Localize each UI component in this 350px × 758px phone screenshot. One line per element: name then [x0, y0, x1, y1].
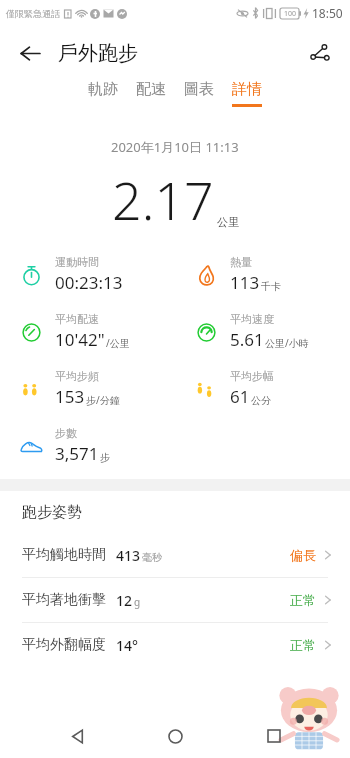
button[interactable]: Back — [10, 33, 50, 73]
staticText: 偏長 — [290, 547, 316, 563]
staticText: 153 — [55, 385, 85, 408]
staticText: 5.61 — [230, 328, 264, 351]
staticText: 圖表 — [184, 80, 214, 99]
staticText: 平均速度 — [230, 312, 274, 326]
button[interactable]: 配速 — [127, 80, 175, 120]
staticText: 正常 — [290, 592, 316, 608]
button[interactable]: Home — [153, 714, 197, 758]
staticText: 毫秒 — [142, 551, 162, 564]
button[interactable]: 平均外翻幅度 — [0, 623, 350, 667]
button[interactable]: 軌跡 — [79, 80, 127, 120]
staticText: 千卡 — [261, 280, 281, 293]
staticText: 平均觸地時間 — [22, 546, 106, 564]
staticText: 跑步姿勢 — [22, 503, 82, 522]
staticText: 2020年1月10日 11:13 — [111, 138, 239, 156]
staticText: 18:50 — [312, 5, 343, 21]
staticText: g — [134, 595, 141, 609]
button[interactable]: Back — [55, 714, 99, 758]
staticText: 413 — [116, 546, 141, 565]
staticText: 3,571 — [55, 442, 99, 465]
button[interactable]: 平均觸地時間 — [0, 533, 350, 577]
button[interactable]: Share — [300, 33, 340, 73]
staticText: 步數 — [55, 426, 77, 440]
staticText: 熱量 — [230, 255, 252, 269]
staticText: 2.17 — [112, 164, 214, 235]
staticText: 戶外跑步 — [58, 41, 138, 66]
staticText: 113 — [230, 271, 260, 294]
staticText: 步 — [100, 451, 110, 464]
staticText: 平均步幅 — [230, 369, 274, 383]
staticText: 配速 — [136, 80, 166, 99]
button[interactable]: 圖表 — [175, 80, 223, 120]
staticText: 12 — [116, 591, 133, 610]
staticText: 14° — [116, 636, 138, 655]
staticText: 公里 — [217, 215, 239, 229]
staticText: 步/分鐘 — [86, 393, 120, 407]
staticText: 平均著地衝擊 — [22, 591, 106, 609]
staticText: 運動時間 — [55, 255, 99, 269]
staticText: 僅限緊急通話 — [6, 8, 60, 19]
staticText: 61 — [230, 385, 250, 408]
staticText: 軌跡 — [88, 80, 118, 99]
staticText: 詳情 — [232, 80, 262, 99]
button[interactable]: Recents — [252, 714, 296, 758]
staticText: 公分 — [251, 394, 271, 407]
staticText: 10'42" — [55, 328, 105, 351]
staticText: 平均外翻幅度 — [22, 636, 106, 654]
staticText: 00:23:13 — [55, 271, 123, 294]
staticText: 公里/小時 — [265, 336, 309, 350]
staticText: 100 — [284, 9, 297, 19]
button[interactable]: 平均著地衝擊 — [0, 578, 350, 622]
staticText: 正常 — [290, 637, 316, 653]
staticText: 平均配速 — [55, 312, 99, 326]
button[interactable]: 詳情 — [223, 80, 271, 120]
staticText: 平均步頻 — [55, 369, 99, 383]
staticText: /公里 — [106, 336, 130, 350]
